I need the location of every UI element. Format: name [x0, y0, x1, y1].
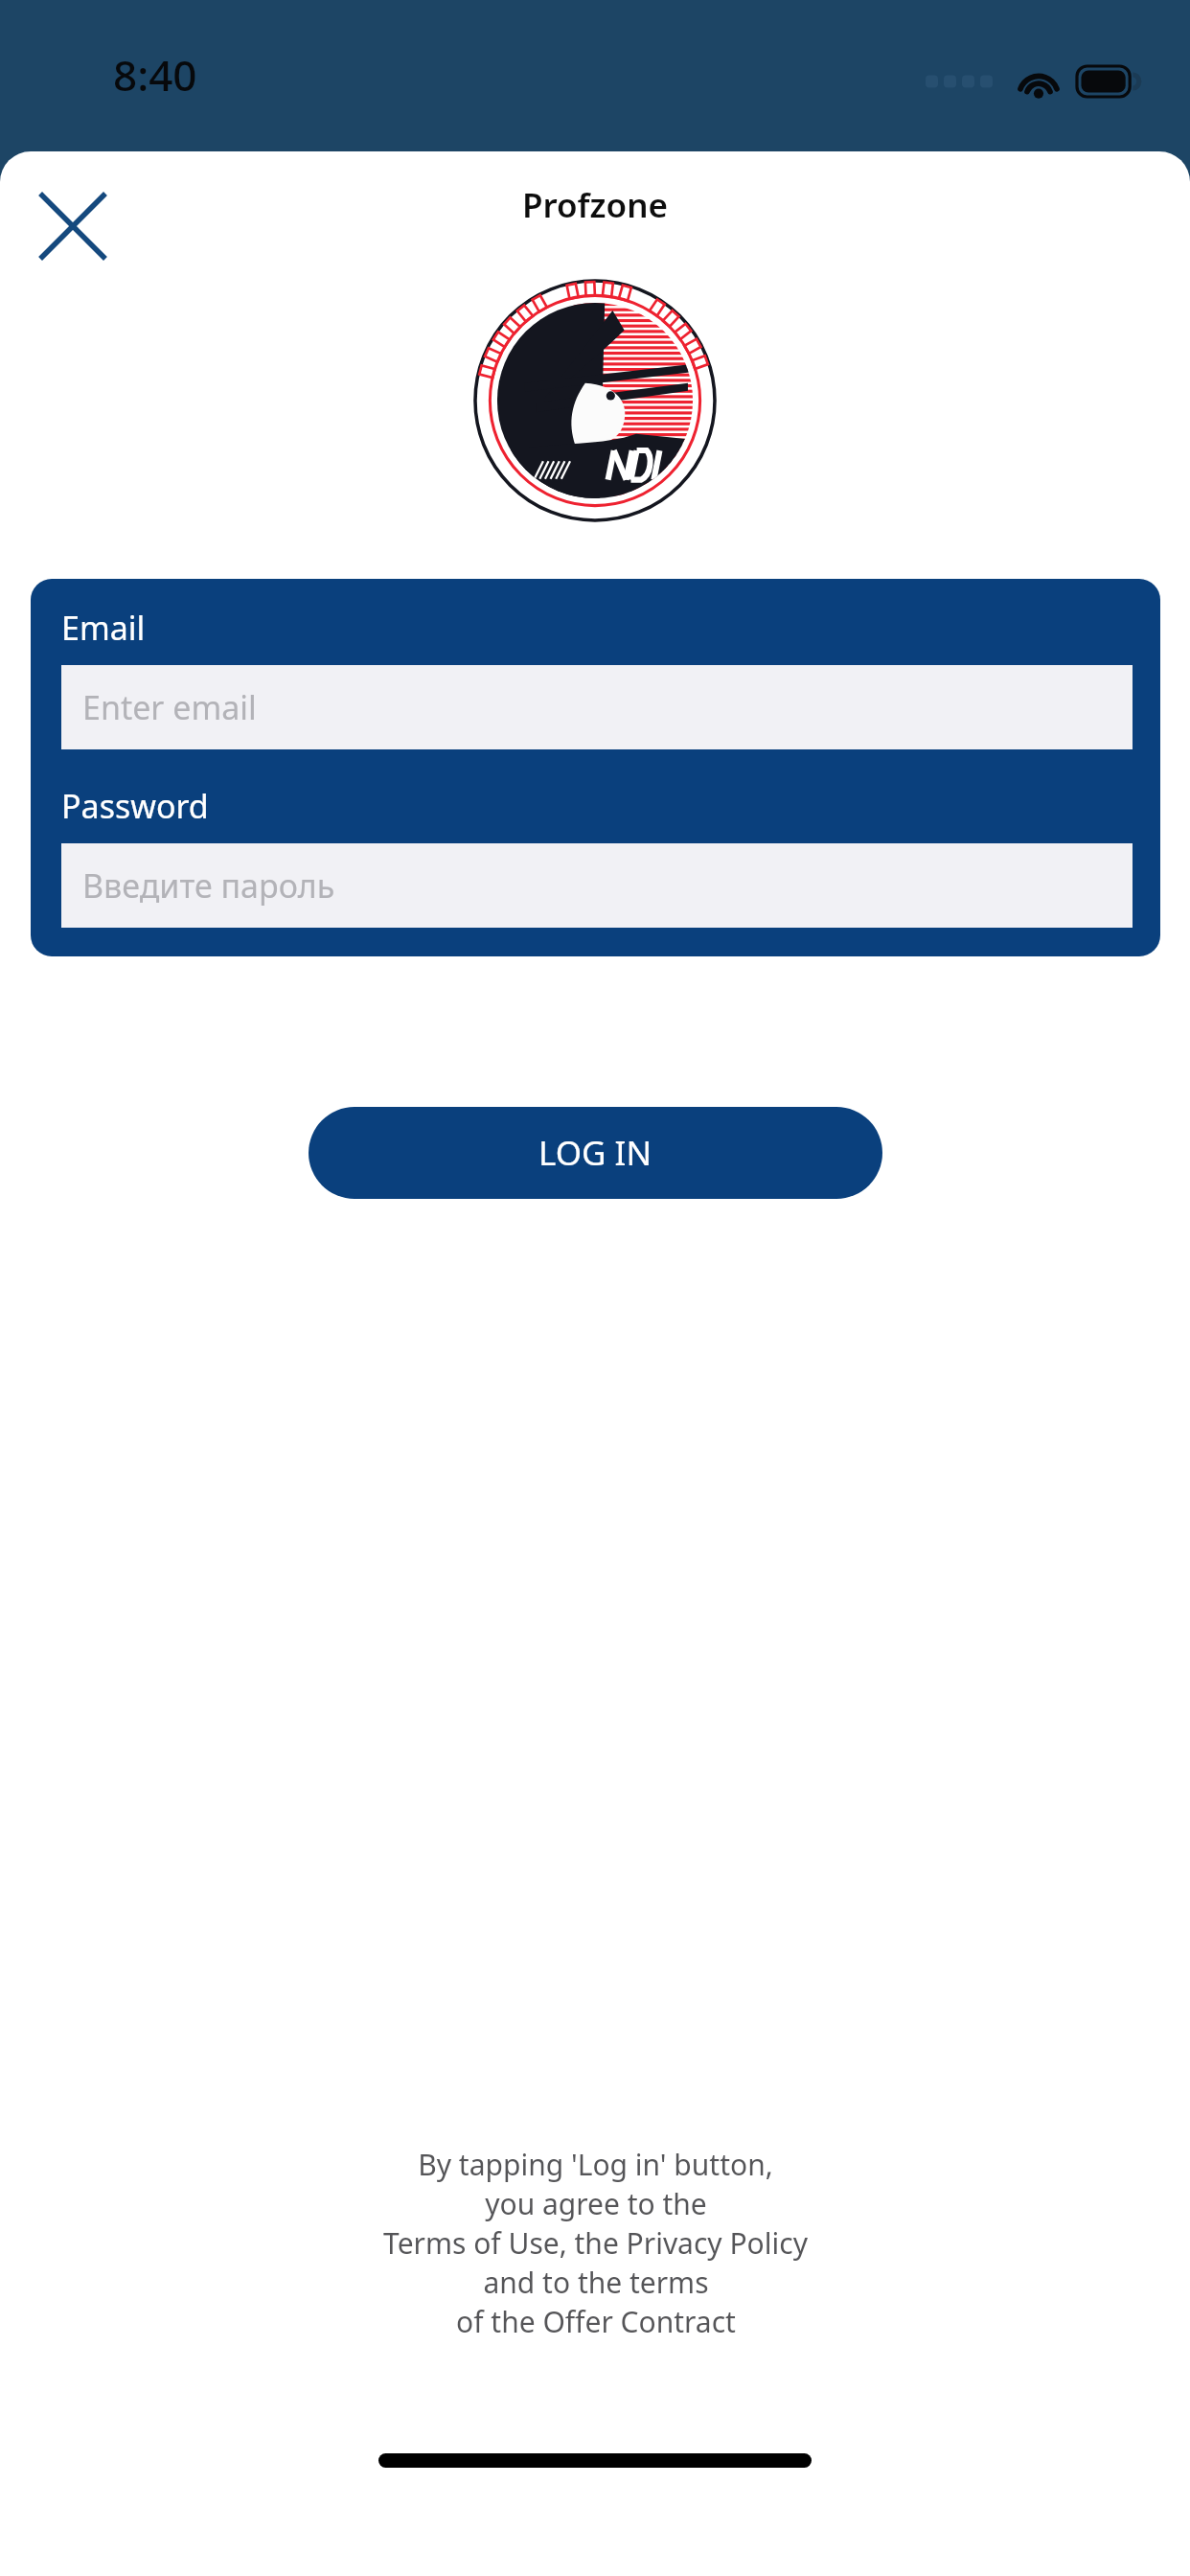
staticText: and to the terms [483, 2263, 709, 2302]
button[interactable]: Введите пароль [61, 843, 1133, 928]
staticText: you agree to the [485, 2184, 707, 2223]
staticText: of the Offer Contract [456, 2302, 736, 2341]
button[interactable]: Enter email [61, 665, 1133, 749]
staticText: Введите пароль [82, 863, 335, 908]
button[interactable]: Close [13, 167, 132, 286]
staticText: By tapping 'Log in' button, [418, 2145, 773, 2184]
staticText: Password [61, 784, 209, 828]
staticText: Profzone [522, 182, 668, 228]
staticText: Terms of Use, the Privacy Policy [383, 2223, 808, 2263]
button[interactable]: LOG IN [309, 1107, 882, 1199]
staticText: 8:40 [113, 46, 197, 103]
staticText: Enter email [82, 685, 257, 729]
staticText: Email [61, 606, 146, 650]
staticText: LOG IN [538, 1130, 652, 1176]
